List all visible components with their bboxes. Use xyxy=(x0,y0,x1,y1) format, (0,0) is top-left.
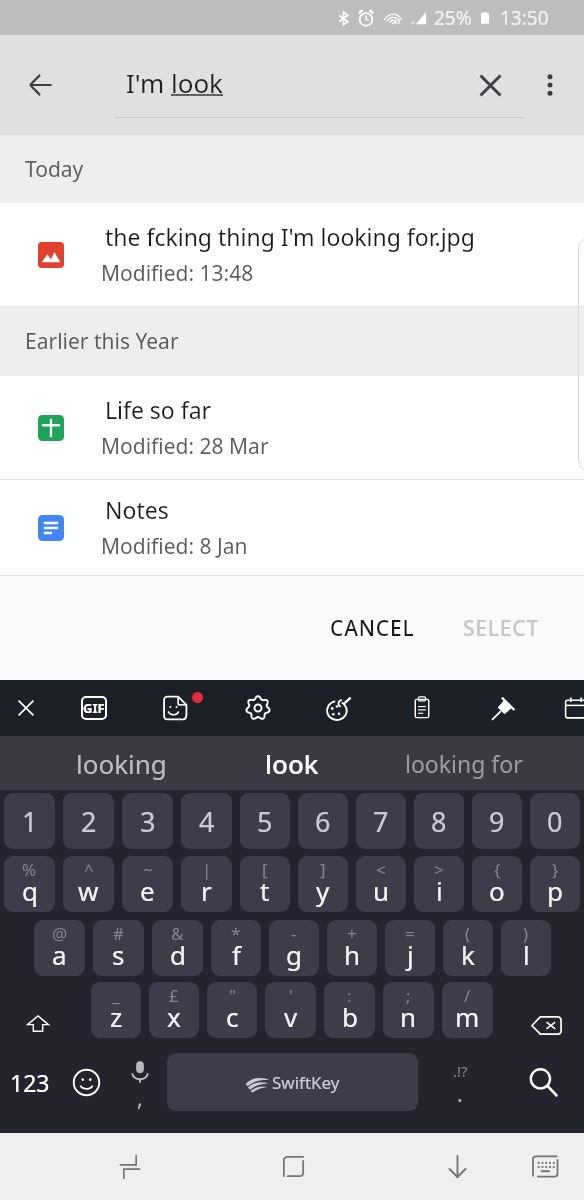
staticText: - xyxy=(291,922,297,945)
staticText: | xyxy=(202,858,212,881)
button[interactable]: 4 xyxy=(181,793,232,849)
button[interactable]: Search xyxy=(502,1038,584,1126)
button[interactable]: Close keyboard xyxy=(0,680,54,736)
button[interactable]: Recents xyxy=(94,1133,166,1200)
button[interactable]: @ xyxy=(34,920,85,976)
staticText: ~ xyxy=(143,858,153,881)
staticText: look xyxy=(265,746,319,781)
button[interactable]: ( xyxy=(443,920,493,976)
button[interactable]: the fcking thing I'm looking for.jpg xyxy=(0,203,584,307)
button[interactable]: Stickers xyxy=(147,680,203,736)
staticText: v xyxy=(284,999,298,1034)
staticText: ; xyxy=(406,984,411,1007)
button[interactable]: } xyxy=(530,856,580,912)
button[interactable]: 9 xyxy=(472,793,522,849)
staticText: CANCEL xyxy=(330,614,415,643)
button[interactable]: # xyxy=(93,920,144,976)
staticText: / xyxy=(464,984,471,1007)
button[interactable]: / xyxy=(442,982,493,1038)
staticText: & xyxy=(171,922,184,945)
button[interactable]: look xyxy=(227,736,357,790)
button[interactable]: 5 xyxy=(240,793,290,849)
button[interactable]: | xyxy=(181,856,232,912)
staticText: u xyxy=(373,873,390,908)
button[interactable]: Settings xyxy=(230,680,286,736)
button[interactable]: 123 xyxy=(0,1038,60,1126)
button[interactable]: ~ xyxy=(122,856,173,912)
button[interactable]: Home xyxy=(257,1133,329,1200)
button[interactable]: 7 xyxy=(356,793,406,849)
button[interactable]: 0 xyxy=(530,793,580,849)
button[interactable]: CANCEL xyxy=(314,600,431,657)
button[interactable]: Voice input xyxy=(112,1038,167,1126)
button[interactable]: & xyxy=(152,920,203,976)
button[interactable]: Shift xyxy=(0,982,90,1038)
button[interactable]: Clipboard xyxy=(394,680,450,736)
button[interactable]: .!? xyxy=(418,1038,502,1126)
button[interactable]: More options xyxy=(524,59,576,111)
button[interactable]: Clear search xyxy=(464,59,516,111)
staticText: j xyxy=(407,937,414,972)
staticText: b xyxy=(342,999,358,1034)
button[interactable]: Switch keyboard xyxy=(509,1133,581,1200)
button[interactable]: - xyxy=(269,920,319,976)
button[interactable]: 6 xyxy=(298,793,348,849)
button[interactable]: ^ xyxy=(63,856,114,912)
button[interactable]: ; xyxy=(383,982,434,1038)
button[interactable]: = xyxy=(385,920,435,976)
button[interactable]: Space xyxy=(167,1053,418,1111)
staticText: SELECT xyxy=(463,614,540,643)
button[interactable]: > xyxy=(414,856,464,912)
button[interactable]: ) xyxy=(501,920,551,976)
button[interactable]: 1 xyxy=(4,793,55,849)
staticText: _ xyxy=(112,984,120,1007)
staticText: + xyxy=(347,922,357,945)
staticText: the fcking thing I'm looking for.jpg xyxy=(105,221,475,252)
button[interactable]: Pin xyxy=(476,680,532,736)
staticText: m xyxy=(455,999,480,1034)
button[interactable]: Themes xyxy=(311,680,367,736)
button[interactable]: 3 xyxy=(122,793,173,849)
button[interactable]: _ xyxy=(91,982,141,1038)
button[interactable]: 8 xyxy=(414,793,464,849)
button[interactable]: " xyxy=(207,982,257,1038)
button[interactable]: ] xyxy=(298,856,348,912)
button[interactable]: looking xyxy=(40,736,203,790)
staticText: q xyxy=(22,873,38,908)
button[interactable]: £ xyxy=(149,982,199,1038)
button[interactable]: SELECT xyxy=(447,600,556,657)
button[interactable]: Notes xyxy=(0,480,584,576)
button[interactable]: Emoji xyxy=(60,1038,112,1126)
button[interactable]: < xyxy=(356,856,406,912)
staticText: % xyxy=(22,858,37,881)
staticText: ' xyxy=(289,984,293,1007)
button[interactable]: + xyxy=(327,920,377,976)
staticText: d xyxy=(170,937,186,972)
button[interactable]: Backspace xyxy=(494,982,584,1038)
staticText: s xyxy=(112,937,125,972)
staticText: 25% xyxy=(434,5,472,31)
button[interactable]: % xyxy=(4,856,55,912)
staticText: { xyxy=(494,858,501,881)
staticText: GIF xyxy=(83,699,105,717)
staticText: 6 xyxy=(315,803,331,840)
button[interactable]: Back xyxy=(12,57,68,113)
staticText: } xyxy=(552,858,559,881)
staticText: 0 xyxy=(547,803,563,840)
button[interactable]: Life so far xyxy=(0,376,584,480)
button[interactable]: looking for xyxy=(376,736,551,790)
button[interactable]: ' xyxy=(265,982,316,1038)
button[interactable]: : xyxy=(324,982,375,1038)
staticText: Today xyxy=(25,155,84,184)
button[interactable]: 2 xyxy=(63,793,114,849)
button[interactable]: * xyxy=(211,920,261,976)
staticText: i xyxy=(436,873,443,908)
button[interactable]: [ xyxy=(240,856,290,912)
staticText: SwiftKey xyxy=(272,1071,340,1094)
staticText: 5 xyxy=(257,803,273,840)
button[interactable]: GIF xyxy=(66,680,122,736)
button[interactable]: Calendar xyxy=(548,680,584,736)
button[interactable]: { xyxy=(472,856,522,912)
button[interactable]: Back xyxy=(421,1133,493,1200)
staticText: : xyxy=(347,984,352,1007)
